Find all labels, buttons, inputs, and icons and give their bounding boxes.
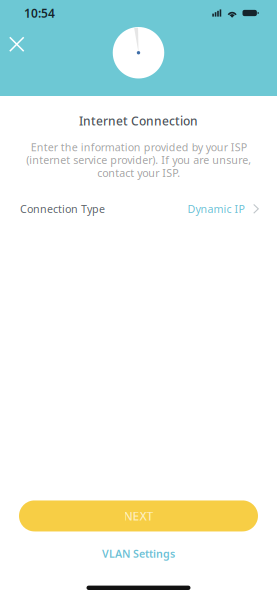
staticText: Connection Type: [20, 202, 105, 216]
staticText: Enter the information provided by your I…: [26, 140, 251, 180]
staticText: 10:54: [24, 5, 55, 21]
button[interactable]: VLAN Settings: [102, 539, 175, 568]
button[interactable]: Connection Type: [0, 197, 277, 221]
button[interactable]: NEXT: [19, 500, 258, 531]
button[interactable]: Close: [0, 0, 36, 62]
staticText: VLAN Settings: [102, 546, 175, 561]
staticText: Dynamic IP: [187, 202, 244, 216]
staticText: Internet Connection: [79, 113, 198, 129]
staticText: NEXT: [123, 508, 153, 524]
